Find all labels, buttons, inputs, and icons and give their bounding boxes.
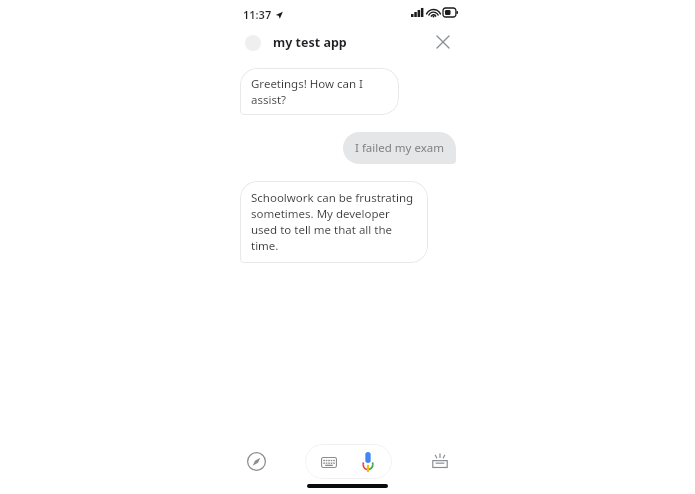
button[interactable]: Voice search (353, 447, 383, 477)
button[interactable]: I failed my exam (343, 132, 456, 164)
staticText: 11:37 (243, 7, 272, 22)
button[interactable]: Schoolwork can be frustrating sometimes.… (240, 181, 428, 263)
staticText: I failed my exam (355, 140, 444, 156)
button[interactable]: Updates (424, 445, 456, 477)
button[interactable]: Explore (240, 445, 272, 477)
button[interactable]: my test app (240, 34, 430, 51)
staticText: my test app (273, 34, 347, 51)
staticText: Schoolwork can be frustrating sometimes.… (251, 190, 417, 254)
staticText: Greetings! How can I assist? (251, 76, 388, 107)
button[interactable]: Close (430, 29, 456, 55)
button[interactable]: Keyboard (314, 447, 344, 477)
button[interactable]: Greetings! How can I assist? (240, 68, 399, 115)
